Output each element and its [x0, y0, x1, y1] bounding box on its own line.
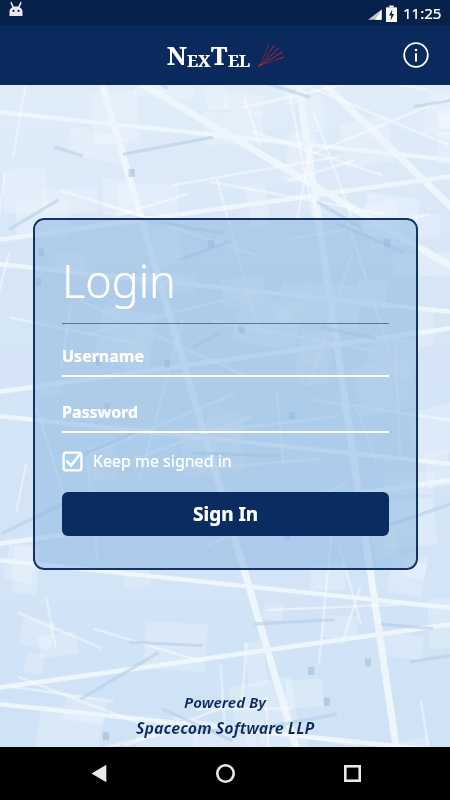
- staticText: 11:25: [403, 3, 442, 23]
- staticText: EX: [187, 49, 211, 72]
- staticText: Password: [62, 401, 139, 423]
- button[interactable]: Information: [396, 35, 436, 75]
- button[interactable]: Recent apps: [324, 747, 380, 800]
- staticText: Powered By: [184, 692, 267, 712]
- staticText: Username: [62, 345, 144, 367]
- staticText: N: [167, 38, 187, 72]
- button[interactable]: Home: [197, 747, 253, 800]
- staticText: EL: [228, 49, 251, 72]
- button[interactable]: Back: [71, 747, 127, 800]
- button[interactable]: Keep me signed in: [62, 450, 232, 472]
- staticText: T: [211, 38, 228, 72]
- button[interactable]: Password: [62, 401, 389, 433]
- staticText: Keep me signed in: [93, 450, 232, 472]
- button[interactable]: Sign In: [62, 492, 389, 536]
- button[interactable]: Username: [62, 345, 389, 377]
- staticText: Login: [62, 250, 176, 311]
- staticText: Spacecom Software LLP: [136, 717, 315, 739]
- staticText: Sign In: [193, 501, 259, 527]
